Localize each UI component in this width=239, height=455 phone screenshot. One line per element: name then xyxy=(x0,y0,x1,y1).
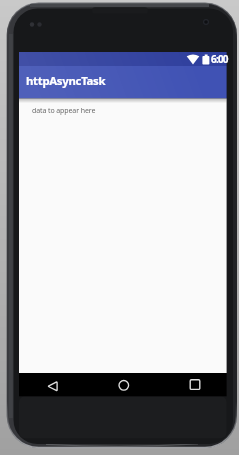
button[interactable] xyxy=(180,373,210,396)
staticText: data to appear here xyxy=(32,106,96,116)
button[interactable] xyxy=(38,373,68,396)
button[interactable] xyxy=(109,373,139,396)
staticText: 6:00 xyxy=(211,52,228,66)
staticText: httpAsyncTask xyxy=(26,73,106,89)
